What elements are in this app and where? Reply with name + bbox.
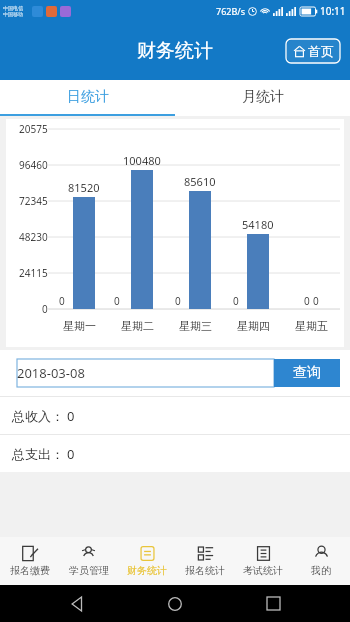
staticText: 0 <box>233 294 239 308</box>
staticText: 10:11 <box>320 4 346 18</box>
staticText: 中国移动 <box>3 11 23 17</box>
staticText: 48230 <box>19 230 48 244</box>
button[interactable]: 总支出： <box>0 435 350 472</box>
staticText: 财务统计 <box>137 39 213 63</box>
staticText: 首页 <box>308 43 334 59</box>
staticText: 100480 <box>123 153 161 168</box>
button[interactable]: 首页 <box>287 40 340 62</box>
staticText: 81520 <box>68 180 100 195</box>
staticText: 2018-03-08 <box>17 364 85 382</box>
staticText: 报名缴费 <box>10 564 50 577</box>
button[interactable]: 报名统计 <box>176 537 234 585</box>
staticText: 总支出： <box>12 446 64 462</box>
staticText: 0 <box>304 294 310 308</box>
staticText: 星期四 <box>237 319 270 333</box>
staticText: 报名统计 <box>185 564 225 577</box>
staticText: 星期一 <box>63 319 96 333</box>
staticText: 星期三 <box>179 319 212 333</box>
staticText: 查询 <box>293 364 321 382</box>
button[interactable]: 学员管理 <box>59 537 118 585</box>
staticText: 考试统计 <box>243 564 283 577</box>
staticText: 762B/s <box>216 5 245 17</box>
staticText: 0 <box>67 407 75 425</box>
button[interactable]: 2018-03-08 <box>10 359 274 387</box>
staticText: 星期五 <box>295 319 328 333</box>
staticText: 星期二 <box>121 319 154 333</box>
button[interactable]: Home <box>155 585 195 622</box>
staticText: 总收入： <box>12 408 64 424</box>
button[interactable]: 报名缴费 <box>0 537 59 585</box>
button[interactable]: 财务统计 <box>118 537 176 585</box>
button[interactable]: 月统计 <box>175 80 350 114</box>
button[interactable]: 考试统计 <box>234 537 292 585</box>
staticText: 月统计 <box>242 88 284 106</box>
staticText: 0 <box>313 294 319 308</box>
button[interactable]: Recents <box>253 585 293 622</box>
staticText: 0 <box>59 294 65 308</box>
staticText: 0 <box>114 294 120 308</box>
staticText: 财务统计 <box>127 564 167 577</box>
staticText: 96460 <box>19 158 48 172</box>
staticText: 学员管理 <box>69 564 109 577</box>
button[interactable]: 总收入： <box>0 397 350 434</box>
staticText: 中国电信 <box>3 5 23 11</box>
button[interactable]: 我的 <box>292 537 350 585</box>
button[interactable]: 查询 <box>274 359 340 387</box>
staticText: 日统计 <box>67 88 109 106</box>
staticText: 0 <box>175 294 181 308</box>
staticText: 0 <box>67 445 75 463</box>
staticText: 54180 <box>242 217 274 232</box>
staticText: 24115 <box>19 266 48 280</box>
staticText: 20575 <box>19 122 48 136</box>
staticText: 我的 <box>311 564 331 577</box>
staticText: 85610 <box>184 174 216 189</box>
button[interactable]: Back <box>58 585 98 622</box>
staticText: 0 <box>42 302 48 316</box>
staticText: 72345 <box>19 194 48 208</box>
button[interactable]: 日统计 <box>0 80 175 114</box>
